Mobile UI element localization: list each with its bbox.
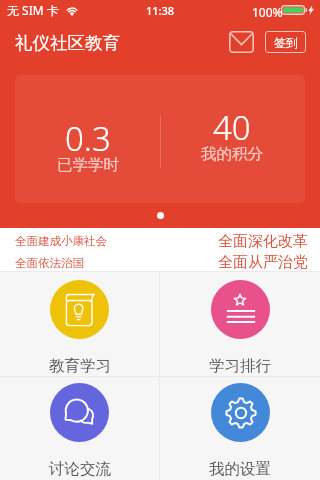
- staticText: 我的设置: [209, 459, 271, 479]
- staticText: 无 SIM 卡: [7, 2, 59, 18]
- staticText: 我的积分: [201, 144, 263, 164]
- staticText: 学习排行: [209, 356, 271, 376]
- staticText: 全面依法治国: [15, 256, 84, 270]
- button[interactable]: Messages: [227, 29, 256, 55]
- button[interactable]: 我的设置: [160, 377, 320, 480]
- staticText: 全面从严治党: [218, 253, 308, 272]
- staticText: 礼仪社区教育: [15, 32, 120, 54]
- staticText: 教育学习: [49, 356, 111, 376]
- button[interactable]: 讨论交流: [0, 377, 159, 480]
- staticText: 11:38: [146, 3, 175, 18]
- button[interactable]: 学习排行: [160, 272, 320, 376]
- staticText: 全面深化改革: [218, 232, 308, 251]
- staticText: 100%: [252, 4, 283, 20]
- staticText: 签到: [274, 35, 298, 50]
- button[interactable]: 签到: [265, 31, 306, 53]
- staticText: 全面建成小康社会: [15, 234, 107, 248]
- button[interactable]: 教育学习: [0, 272, 159, 376]
- staticText: 0.3: [65, 116, 111, 161]
- staticText: 已学学时: [57, 155, 119, 175]
- staticText: 讨论交流: [49, 459, 111, 479]
- staticText: 40: [213, 105, 251, 150]
